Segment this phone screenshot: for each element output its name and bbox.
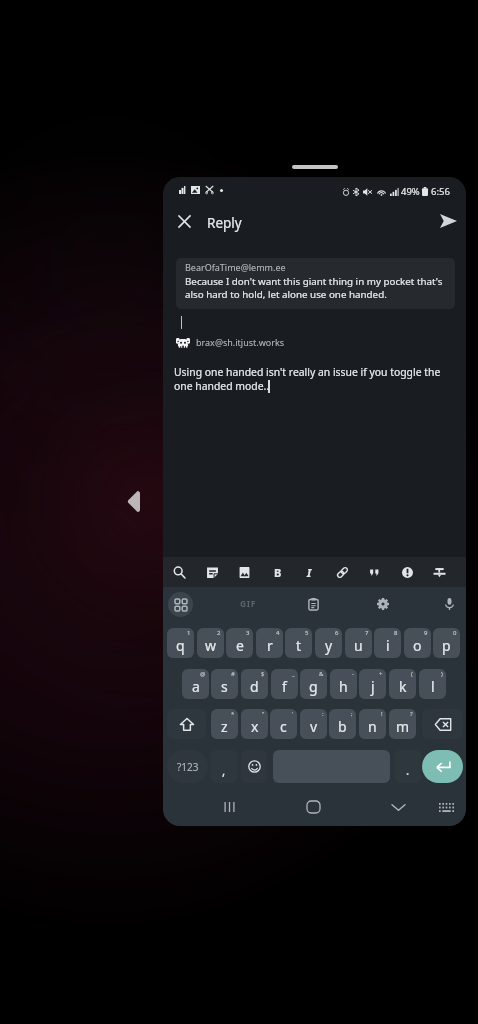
- staticText: y: [325, 636, 333, 655]
- staticText: _: [292, 670, 295, 678]
- staticText: Because I don't want this giant thing in…: [185, 275, 446, 301]
- staticText: 9: [424, 629, 428, 637]
- button[interactable]: GIF: [234, 591, 262, 617]
- button[interactable]: o: [404, 628, 431, 658]
- button[interactable]: Close: [168, 205, 200, 237]
- button[interactable]: h: [330, 669, 357, 699]
- staticText: B: [274, 565, 282, 580]
- staticText: m: [396, 717, 410, 736]
- button[interactable]: b: [329, 709, 356, 739]
- button[interactable]: e: [226, 628, 253, 658]
- staticText: a: [192, 677, 200, 696]
- button[interactable]: Period: [395, 750, 421, 783]
- button[interactable]: Settings: [369, 591, 397, 617]
- button[interactable]: Recents: [213, 791, 245, 823]
- button[interactable]: Emoji: [241, 750, 267, 783]
- staticText: o: [413, 636, 422, 655]
- button[interactable]: y: [315, 628, 342, 658]
- button[interactable]: Italic: [299, 562, 320, 583]
- staticText: c: [280, 717, 287, 736]
- button[interactable]: g: [300, 669, 327, 699]
- staticText: n: [368, 717, 377, 736]
- staticText: p: [442, 636, 451, 655]
- staticText: 5: [305, 629, 309, 637]
- button[interactable]: f: [271, 669, 298, 699]
- staticText: -: [352, 670, 354, 678]
- button[interactable]: l: [419, 669, 446, 699]
- staticText: w: [205, 636, 217, 655]
- button[interactable]: x: [241, 709, 268, 739]
- button[interactable]: Backspace: [422, 709, 463, 739]
- staticText: ?: [410, 710, 413, 718]
- staticText: brax@sh.itjust.works: [196, 336, 285, 348]
- staticText: ,: [222, 762, 226, 778]
- staticText: I: [307, 565, 312, 580]
- button[interactable]: k: [389, 669, 416, 699]
- staticText: r: [267, 636, 273, 655]
- staticText: $: [261, 670, 265, 678]
- button[interactable]: s: [211, 669, 238, 699]
- button[interactable]: Link: [332, 562, 353, 583]
- button[interactable]: Note: [202, 562, 223, 583]
- staticText: 49%: [401, 185, 420, 198]
- staticText: 1: [187, 629, 191, 637]
- button[interactable]: Apps: [166, 591, 194, 617]
- button[interactable]: Clipboard: [299, 591, 327, 617]
- button[interactable]: Send: [432, 205, 464, 237]
- staticText: GIF: [240, 598, 256, 610]
- staticText: q: [176, 636, 185, 655]
- staticText: v: [310, 717, 318, 736]
- button[interactable]: Quote: [364, 562, 385, 583]
- button[interactable]: Home: [297, 791, 329, 823]
- staticText: :: [322, 710, 324, 718]
- button[interactable]: Align: [429, 562, 450, 583]
- staticText: @: [200, 670, 206, 678]
- button[interactable]: Shift: [167, 709, 206, 739]
- button[interactable]: Comma: [211, 750, 237, 783]
- button[interactable]: Keyboard layout: [430, 791, 462, 823]
- button[interactable]: z: [211, 709, 238, 739]
- button[interactable]: Search: [169, 562, 190, 583]
- staticText: Using one handed isn't really an issue i…: [174, 365, 452, 393]
- staticText: e: [236, 636, 244, 655]
- staticText: 6: [335, 629, 339, 637]
- staticText: t: [296, 636, 302, 655]
- button[interactable]: Symbols: [167, 750, 208, 783]
- button[interactable]: d: [241, 669, 268, 699]
- staticText: *: [231, 710, 235, 718]
- button[interactable]: Bold: [267, 562, 288, 583]
- staticText: ): [441, 670, 443, 678]
- button[interactable]: Spoiler: [397, 562, 418, 583]
- staticText: 0: [453, 629, 457, 637]
- button[interactable]: c: [270, 709, 297, 739]
- button[interactable]: t: [285, 628, 312, 658]
- staticText: +: [379, 670, 383, 678]
- button[interactable]: q: [167, 628, 194, 658]
- button[interactable]: a: [182, 669, 209, 699]
- button[interactable]: n: [359, 709, 386, 739]
- staticText: Reply: [207, 214, 242, 232]
- button[interactable]: p: [433, 628, 460, 658]
- staticText: ': [292, 710, 294, 718]
- button[interactable]: Voice input: [435, 591, 463, 617]
- staticText: x: [251, 717, 259, 736]
- button[interactable]: u: [345, 628, 372, 658]
- button[interactable]: m: [389, 709, 416, 739]
- button[interactable]: Enter: [422, 750, 463, 783]
- button[interactable]: v: [300, 709, 327, 739]
- button[interactable]: Image: [234, 562, 255, 583]
- button[interactable]: Hide keyboard: [382, 791, 414, 823]
- button[interactable]: i: [374, 628, 401, 658]
- button[interactable]: w: [197, 628, 224, 658]
- button[interactable]: j: [359, 669, 386, 699]
- staticText: b: [338, 717, 347, 736]
- staticText: !: [381, 710, 383, 718]
- staticText: ?123: [177, 760, 199, 774]
- button[interactable]: r: [256, 628, 283, 658]
- staticText: u: [354, 636, 363, 655]
- staticText: 2: [217, 629, 221, 637]
- staticText: k: [399, 677, 407, 696]
- staticText: j: [371, 677, 375, 696]
- staticText: 4: [276, 629, 280, 637]
